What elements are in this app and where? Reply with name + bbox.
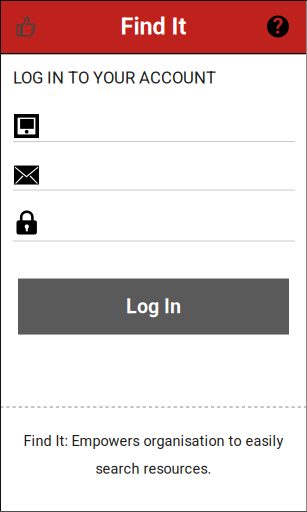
button[interactable]: Log In <box>18 278 289 334</box>
button[interactable]: Like <box>0 0 48 52</box>
staticText: Log In <box>126 295 181 318</box>
staticText: search resources. <box>95 460 211 477</box>
staticText: Find It <box>120 13 186 40</box>
button[interactable]: Help <box>256 0 307 52</box>
staticText: Find It: Empowers organisation to easily <box>23 432 283 449</box>
staticText: LOG IN TO YOUR ACCOUNT <box>13 68 216 87</box>
staticText: ? <box>272 14 283 39</box>
